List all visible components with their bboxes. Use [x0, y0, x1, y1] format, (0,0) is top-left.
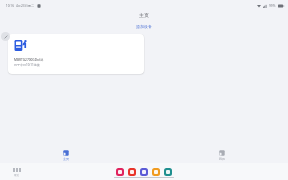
button[interactable]: Recents [12, 167, 22, 177]
staticText: 主页 [63, 157, 69, 161]
button[interactable]: 主页 [60, 149, 72, 162]
button[interactable]: App 2 [128, 168, 136, 176]
button[interactable]: Edit [1, 32, 10, 41]
staticText: 我的 [219, 157, 225, 161]
button[interactable]: 我的 [216, 149, 228, 162]
staticText: 10:16 [5, 4, 14, 8]
button[interactable]: MBRTG2700GD那路 [8, 34, 144, 74]
staticText: 添加设备 [136, 24, 152, 29]
button[interactable]: 添加设备 [133, 23, 155, 30]
button[interactable]: App 5 [164, 168, 172, 176]
button[interactable]: App 4 [152, 168, 160, 176]
staticText: 主页 [139, 12, 149, 18]
button[interactable]: App 3 [140, 168, 148, 176]
staticText: 已于今日10:11连接 [14, 63, 40, 67]
staticText: MBRTG2700GD那路 [14, 58, 44, 62]
staticText: 4月23日周二 [16, 4, 35, 8]
staticText: 99% [269, 4, 276, 8]
staticText: 最近 [14, 173, 20, 176]
button[interactable]: App 1 [116, 168, 124, 176]
